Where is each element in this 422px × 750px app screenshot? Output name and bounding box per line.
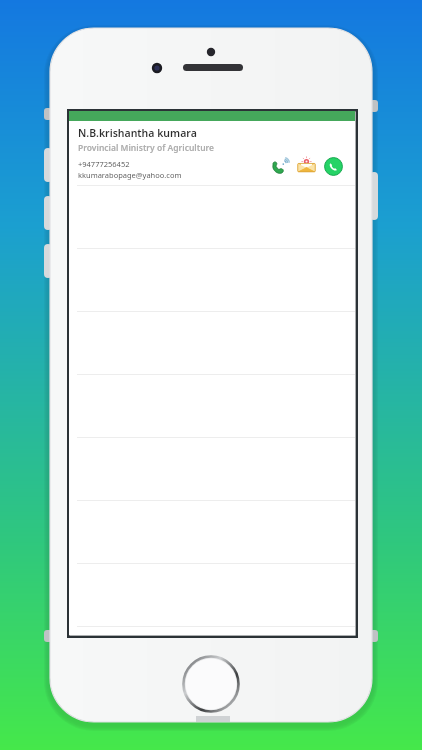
staticText: N.B.krishantha kumara xyxy=(78,126,197,140)
staticText: +94777256452 xyxy=(78,159,130,169)
staticText: Provincial Ministry of Agriculture xyxy=(78,142,215,154)
button[interactable] xyxy=(69,626,355,635)
staticText: kkumarabopage@yahoo.com xyxy=(78,170,182,180)
button[interactable]: WhatsApp message xyxy=(324,157,343,176)
button[interactable]: Call +94777256452 xyxy=(270,157,289,176)
button[interactable]: Send email xyxy=(297,157,316,176)
